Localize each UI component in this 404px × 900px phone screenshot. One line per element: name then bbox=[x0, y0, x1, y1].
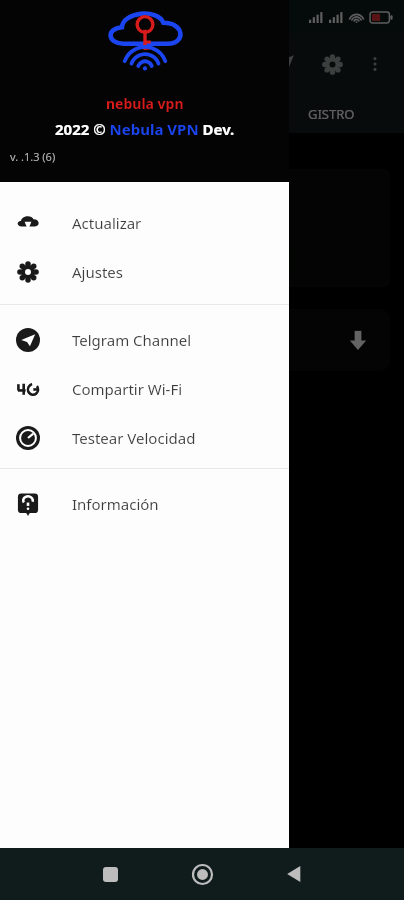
button[interactable]: Información bbox=[0, 479, 289, 528]
button[interactable]: Actualizar bbox=[0, 198, 289, 247]
staticText: 2022 © Nebula VPN Dev. bbox=[55, 119, 235, 139]
staticText: Información bbox=[72, 494, 159, 514]
staticText: Testear Velocidad bbox=[72, 428, 196, 448]
button[interactable]: More options bbox=[356, 45, 394, 83]
button[interactable]: Testear Velocidad bbox=[0, 413, 289, 462]
staticText: Compartir Wi-Fi bbox=[72, 379, 183, 399]
button[interactable]: Telegram bbox=[264, 44, 304, 84]
button[interactable]: Ajustes bbox=[0, 247, 289, 296]
button[interactable]: Back bbox=[272, 852, 316, 896]
button[interactable]: Compartir Wi-Fi bbox=[0, 364, 289, 413]
staticText: v. .1.3 (6) bbox=[10, 149, 56, 164]
staticText: Ajustes bbox=[72, 262, 123, 282]
button[interactable]: Telgram Channel bbox=[0, 315, 289, 364]
button[interactable]: Home bbox=[180, 852, 224, 896]
staticText: GISTRO bbox=[308, 105, 355, 123]
button[interactable]: Recents bbox=[88, 852, 132, 896]
staticText: Ahora te toca bbox=[135, 488, 192, 500]
button[interactable]: SERVIDOR : 8 bbox=[14, 309, 390, 371]
button[interactable]: AGREGAR + TIEMPO bbox=[112, 246, 292, 279]
staticText: SERVIDOR : 8 bbox=[30, 317, 113, 335]
staticText: nebula vpn bbox=[106, 94, 184, 113]
staticText: Telgram Channel bbox=[72, 330, 192, 350]
staticText: Tiempo Restante: bbox=[137, 177, 268, 197]
button[interactable]: Settings bbox=[312, 44, 352, 84]
staticText: Actualizar bbox=[72, 213, 142, 233]
